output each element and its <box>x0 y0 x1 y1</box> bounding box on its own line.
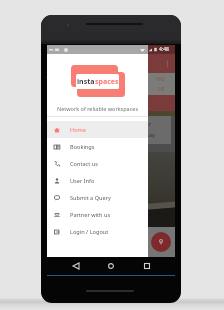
staticText: 14 <box>70 85 77 93</box>
staticText: THU <box>156 76 166 82</box>
button[interactable]: Recents <box>140 259 154 273</box>
staticText: spaces <box>95 77 119 87</box>
staticText: 4:48 <box>159 46 169 53</box>
staticText: Partner with us <box>70 211 111 219</box>
staticText: THU <box>115 76 125 82</box>
staticText: insta <box>77 77 95 87</box>
button[interactable]: Show on map <box>151 232 171 252</box>
staticText: Login / Logout <box>70 228 109 236</box>
staticText: Submit a Query <box>70 194 111 202</box>
button[interactable]: THU <box>41 76 62 93</box>
button[interactable]: THU <box>85 76 108 93</box>
staticText: Bookings <box>70 143 95 151</box>
staticText: THU <box>46 76 56 82</box>
button[interactable]: Partner with us <box>47 206 148 223</box>
button[interactable]: More options <box>164 58 171 70</box>
staticText: 16 <box>116 85 123 93</box>
button[interactable]: Home <box>104 259 118 273</box>
staticText: ₹400/day <box>129 131 156 139</box>
staticText: ₹400/hr <box>129 120 152 128</box>
staticText: Network of reliable workspaces <box>57 105 139 112</box>
button[interactable]: THU <box>108 76 131 93</box>
staticText: Home <box>70 126 86 134</box>
staticText: 15 <box>93 85 100 93</box>
staticText: Contact us <box>70 160 98 168</box>
button[interactable]: THU <box>154 76 167 93</box>
button[interactable]: Contact us <box>47 155 148 172</box>
button[interactable]: Home <box>47 121 148 138</box>
button[interactable]: Submit a Query <box>47 189 148 206</box>
staticText: User Info <box>70 177 95 185</box>
button[interactable]: Back <box>69 259 83 273</box>
button[interactable]: THU <box>131 76 154 93</box>
button[interactable]: THU <box>62 76 85 93</box>
staticText: 18 <box>157 85 164 93</box>
button[interactable]: Login / Logout <box>47 223 148 240</box>
staticText: THU <box>92 76 102 82</box>
button[interactable]: Bookings <box>47 138 148 155</box>
staticText: THU <box>69 76 79 82</box>
button[interactable]: User Info <box>47 172 148 189</box>
